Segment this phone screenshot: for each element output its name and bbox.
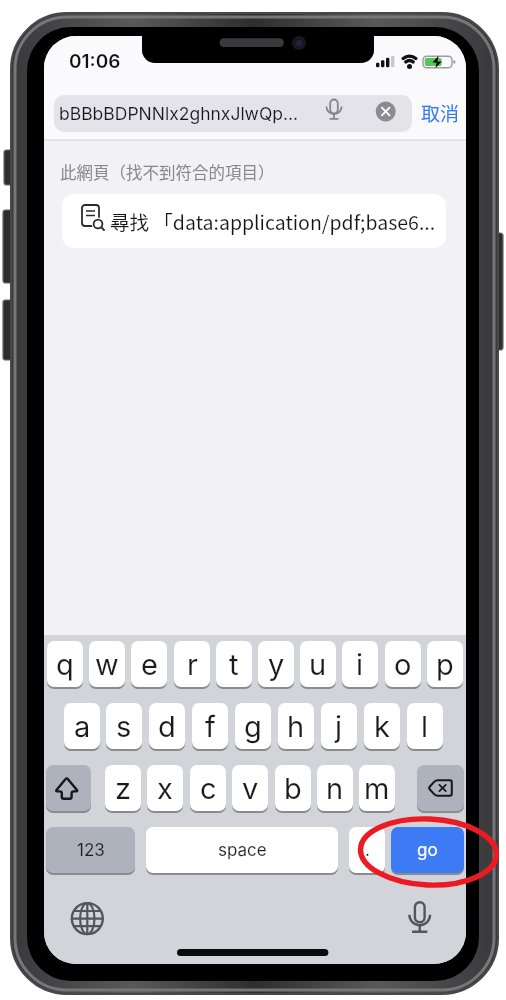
- staticText: b: [284, 771, 302, 806]
- button[interactable]: go: [391, 827, 464, 873]
- staticText: 123: [77, 840, 105, 861]
- button[interactable]: o: [385, 641, 421, 687]
- staticText: q: [56, 647, 74, 682]
- button[interactable]: c: [190, 765, 226, 811]
- button[interactable]: [46, 765, 91, 811]
- staticText: h: [287, 709, 305, 744]
- button[interactable]: p: [427, 641, 463, 687]
- button[interactable]: y: [258, 641, 294, 687]
- staticText: t: [229, 647, 239, 682]
- button[interactable]: m: [359, 765, 395, 811]
- staticText: l: [421, 709, 429, 744]
- staticText: e: [141, 647, 158, 682]
- staticText: i: [356, 647, 364, 682]
- button[interactable]: 123: [46, 827, 135, 873]
- button[interactable]: space: [146, 827, 338, 873]
- staticText: j: [335, 709, 343, 744]
- staticText: p: [436, 647, 454, 682]
- button[interactable]: e: [131, 641, 167, 687]
- button[interactable]: s: [106, 703, 142, 749]
- button[interactable]: h: [278, 703, 314, 749]
- button[interactable]: a: [64, 703, 100, 749]
- staticText: m: [364, 771, 390, 806]
- button[interactable]: w: [89, 641, 125, 687]
- button[interactable]: g: [235, 703, 271, 749]
- staticText: v: [242, 771, 259, 806]
- button[interactable]: r: [174, 641, 210, 687]
- staticText: k: [374, 709, 390, 744]
- button[interactable]: v: [232, 765, 268, 811]
- staticText: g: [244, 709, 262, 744]
- button[interactable]: 尋找 「data:application/pdf;base6...: [62, 194, 446, 248]
- staticText: space: [218, 840, 267, 861]
- button[interactable]: [402, 900, 438, 936]
- staticText: u: [309, 647, 327, 682]
- staticText: n: [326, 771, 344, 806]
- staticText: 尋找 「data:application/pdf;base6...: [110, 207, 436, 235]
- button[interactable]: n: [317, 765, 353, 811]
- button[interactable]: l: [407, 703, 443, 749]
- button[interactable]: u: [300, 641, 336, 687]
- button[interactable]: b: [275, 765, 311, 811]
- staticText: bBBbBDPNNlx2ghnxJlwQp...: [59, 103, 299, 124]
- button[interactable]: .: [349, 827, 385, 873]
- staticText: o: [394, 647, 412, 682]
- button[interactable]: f: [192, 703, 228, 749]
- staticText: w: [95, 647, 119, 682]
- button[interactable]: q: [47, 641, 83, 687]
- staticText: 此網頁（找不到符合的項目）: [60, 160, 275, 184]
- staticText: s: [116, 709, 132, 744]
- staticText: x: [157, 771, 173, 806]
- button[interactable]: 取消: [414, 96, 466, 130]
- button[interactable]: i: [342, 641, 378, 687]
- staticText: r: [187, 647, 198, 682]
- staticText: y: [268, 647, 285, 682]
- staticText: f: [205, 709, 216, 744]
- button[interactable]: j: [321, 703, 357, 749]
- button[interactable]: [70, 900, 106, 936]
- staticText: go: [417, 840, 438, 861]
- button[interactable]: k: [364, 703, 400, 749]
- staticText: 取消: [421, 99, 460, 127]
- button[interactable]: d: [149, 703, 185, 749]
- button[interactable]: x: [147, 765, 183, 811]
- staticText: 01:06: [69, 50, 121, 73]
- button[interactable]: [417, 765, 464, 811]
- staticText: c: [200, 771, 217, 806]
- staticText: a: [74, 709, 91, 744]
- button[interactable]: z: [105, 765, 141, 811]
- button[interactable]: bBBbBDPNNlx2ghnxJlwQp...: [54, 95, 412, 132]
- staticText: d: [158, 709, 176, 744]
- button[interactable]: t: [216, 641, 252, 687]
- staticText: z: [115, 771, 132, 806]
- staticText: .: [365, 840, 370, 861]
